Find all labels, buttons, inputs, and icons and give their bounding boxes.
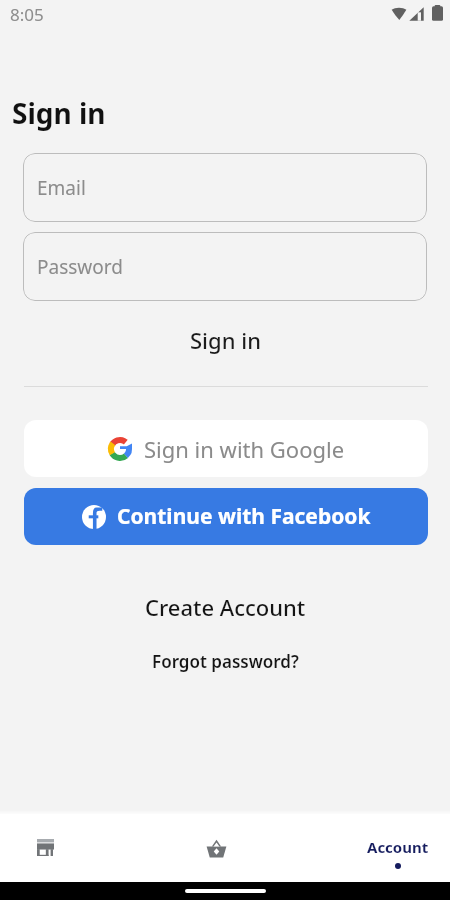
staticText: Sign in with Google — [144, 434, 345, 464]
staticText: Account — [367, 837, 429, 857]
button[interactable]: Forgot password? — [0, 644, 450, 678]
button[interactable]: Email — [23, 153, 427, 222]
staticText: Email — [37, 175, 86, 201]
staticText: Create Account — [145, 592, 306, 622]
staticText: Password — [37, 254, 123, 280]
button[interactable]: Cart — [191, 814, 241, 882]
staticText: Sign in — [12, 94, 106, 132]
button[interactable]: Password — [23, 232, 427, 301]
button[interactable]: Account — [353, 814, 443, 882]
button[interactable]: Continue with Facebook — [24, 488, 428, 545]
button[interactable]: Sign in with Google — [24, 420, 428, 477]
button[interactable]: Store — [20, 814, 70, 882]
staticText: Continue with Facebook — [117, 502, 371, 531]
staticText: Forgot password? — [152, 650, 299, 673]
button[interactable]: Create Account — [0, 586, 450, 628]
staticText: 8:05 — [10, 3, 44, 26]
staticText: Sign in — [190, 325, 261, 355]
button[interactable]: Sign in — [0, 310, 450, 370]
